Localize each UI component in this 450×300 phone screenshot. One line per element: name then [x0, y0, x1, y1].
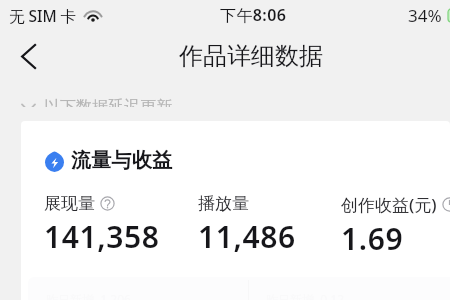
button[interactable]: Back [10, 38, 46, 74]
staticText: 展现量 [44, 193, 95, 214]
staticText: 无 SIM 卡 [9, 5, 77, 26]
staticText: 11,486 [198, 216, 296, 257]
staticText: 34% [408, 4, 442, 27]
staticText: 下午8:06 [220, 4, 287, 26]
staticText: 作品详细数据 [179, 41, 323, 71]
button[interactable]: 以下数据延迟更新 [22, 97, 172, 107]
staticText: 1.69 [341, 218, 404, 259]
staticText: 创作收益(元) [341, 193, 437, 216]
staticText: 播放量 [198, 193, 249, 214]
staticText: 141,358 [44, 216, 160, 257]
staticText: 以下数据延迟更新 [44, 97, 172, 107]
staticText: 流量与收益 [71, 148, 173, 173]
